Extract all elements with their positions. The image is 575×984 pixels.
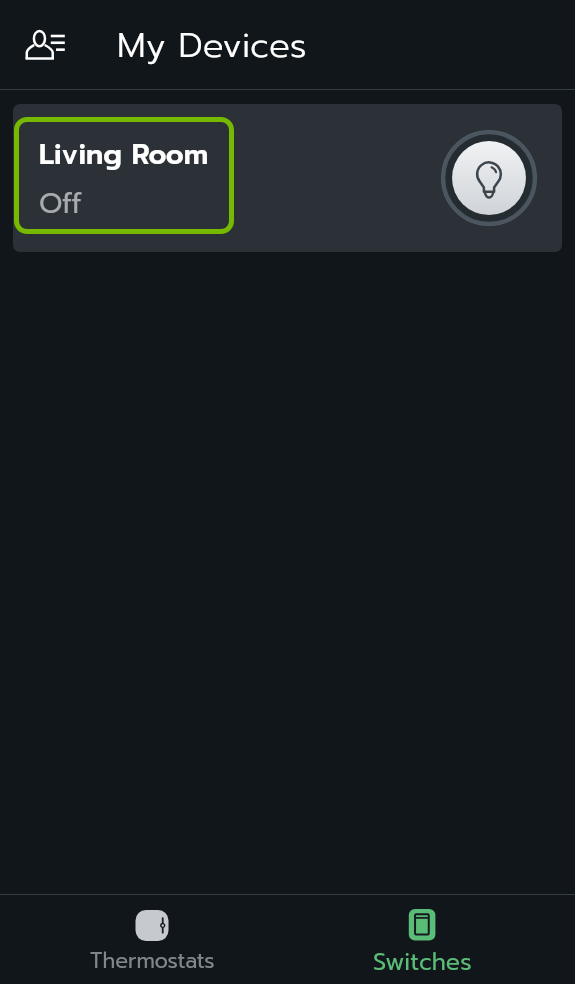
button[interactable]: Living Room: [14, 117, 234, 234]
staticText: Living Room: [39, 133, 209, 175]
staticText: Switches: [373, 944, 472, 980]
button[interactable]: Account: [16, 16, 74, 74]
staticText: Thermostats: [90, 945, 215, 977]
button[interactable]: Switches: [342, 894, 502, 983]
staticText: Off: [39, 182, 82, 225]
button[interactable]: Thermostats: [72, 895, 232, 984]
staticText: My Devices: [117, 19, 307, 71]
button[interactable]: Toggle Living Room light: [441, 130, 537, 226]
